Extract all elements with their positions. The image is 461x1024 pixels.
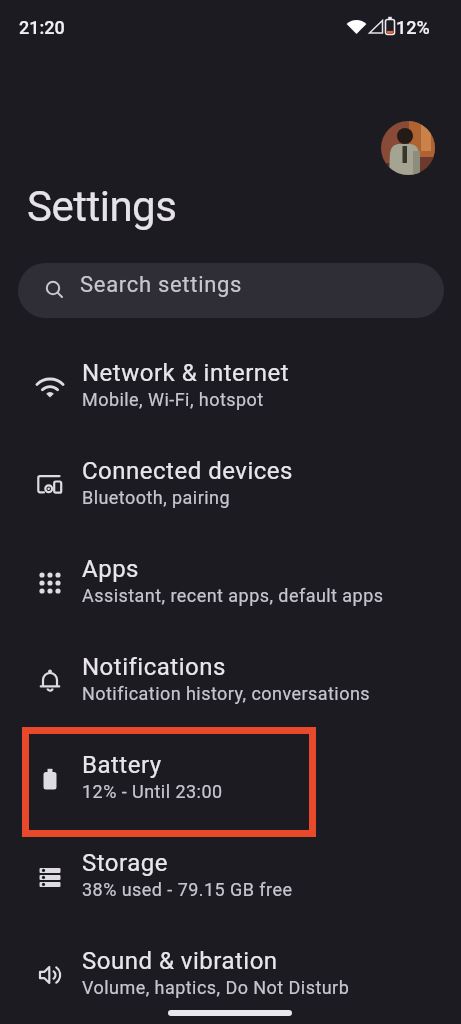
button[interactable]: Battery bbox=[0, 727, 461, 825]
staticText: 21:20 bbox=[19, 17, 65, 38]
staticText: 12% bbox=[396, 17, 430, 38]
button[interactable]: Network & internet bbox=[0, 335, 461, 433]
staticText: Sound & vibration bbox=[82, 947, 278, 975]
staticText: Apps bbox=[82, 555, 139, 583]
button[interactable]: Apps bbox=[0, 531, 461, 629]
staticText: Assistant, recent apps, default apps bbox=[82, 585, 384, 606]
staticText: Battery bbox=[82, 751, 162, 779]
button[interactable]: Sound & vibration bbox=[0, 923, 461, 1021]
button[interactable]: Storage bbox=[0, 825, 461, 923]
button[interactable] bbox=[381, 121, 435, 175]
button[interactable]: Connected devices bbox=[0, 433, 461, 531]
staticText: Notification history, conversations bbox=[82, 683, 371, 704]
button[interactable]: Search settings bbox=[18, 263, 444, 318]
staticText: Bluetooth, pairing bbox=[82, 487, 231, 508]
staticText: Settings bbox=[27, 182, 177, 231]
staticText: 12% - Until 23:00 bbox=[82, 781, 223, 802]
staticText: Volume, haptics, Do Not Disturb bbox=[82, 977, 350, 998]
button[interactable]: Notifications bbox=[0, 629, 461, 727]
staticText: Storage bbox=[82, 849, 168, 877]
staticText: Connected devices bbox=[82, 457, 293, 485]
staticText: Mobile, Wi-Fi, hotspot bbox=[82, 389, 264, 410]
staticText: 38% used - 79.15 GB free bbox=[82, 879, 293, 900]
staticText: Notifications bbox=[82, 653, 226, 681]
staticText: Search settings bbox=[80, 272, 243, 298]
staticText: Network & internet bbox=[82, 359, 290, 387]
